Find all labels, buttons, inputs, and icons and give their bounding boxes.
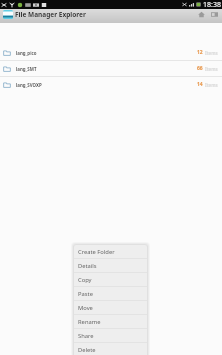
button[interactable]: Copy <box>74 273 147 286</box>
button[interactable]: Move <box>74 301 147 314</box>
button[interactable]: Home <box>196 9 206 19</box>
staticText: Details <box>78 262 97 270</box>
staticText: Move <box>78 304 93 312</box>
button[interactable]: Paste <box>74 287 147 300</box>
button[interactable]: lang_pico <box>0 45 222 60</box>
staticText: Create Folder <box>78 248 115 256</box>
staticText: Share <box>78 332 94 340</box>
staticText: lang_SMT <box>16 66 37 72</box>
staticText: Rename <box>78 318 101 326</box>
staticText: 12 <box>197 49 203 56</box>
staticText: Items <box>205 66 218 72</box>
staticText: Items <box>205 50 218 56</box>
button[interactable]: Rename <box>74 315 147 328</box>
staticText: lang_pico <box>16 50 37 56</box>
staticText: Paste <box>78 290 93 298</box>
staticText: Delete <box>78 346 96 354</box>
staticText: Copy <box>78 276 92 284</box>
button[interactable]: Share <box>74 329 147 342</box>
button[interactable]: Details <box>74 259 147 272</box>
button[interactable]: Create Folder <box>74 245 147 258</box>
staticText: 14 <box>197 81 203 88</box>
staticText: File Manager Explorer <box>15 10 86 19</box>
staticText: Items <box>205 82 218 88</box>
button[interactable]: lang_SMT <box>0 61 222 76</box>
button[interactable]: Delete <box>74 343 147 355</box>
staticText: 18:38 <box>203 0 221 9</box>
button[interactable]: File manager icon <box>3 10 13 19</box>
staticText: lang_SVOXP <box>16 82 42 88</box>
button[interactable]: lang_SVOXP <box>0 77 222 92</box>
button[interactable]: Storage <box>209 9 219 19</box>
staticText: 66 <box>197 65 203 72</box>
